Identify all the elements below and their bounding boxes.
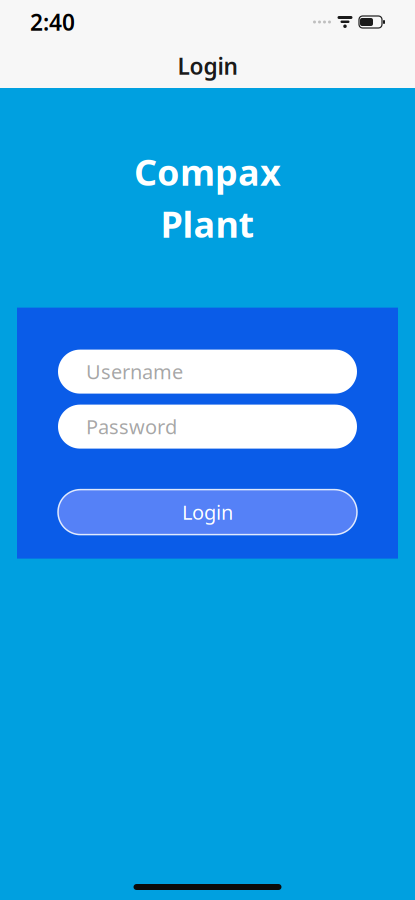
- staticText: Username: [86, 358, 183, 385]
- staticText: 2:40: [30, 7, 75, 37]
- button[interactable]: Login: [58, 490, 357, 535]
- staticText: Compax: [134, 148, 281, 196]
- staticText: Login: [177, 51, 237, 81]
- staticText: Login: [182, 499, 233, 525]
- staticText: Plant: [160, 200, 254, 248]
- staticText: Password: [86, 413, 177, 440]
